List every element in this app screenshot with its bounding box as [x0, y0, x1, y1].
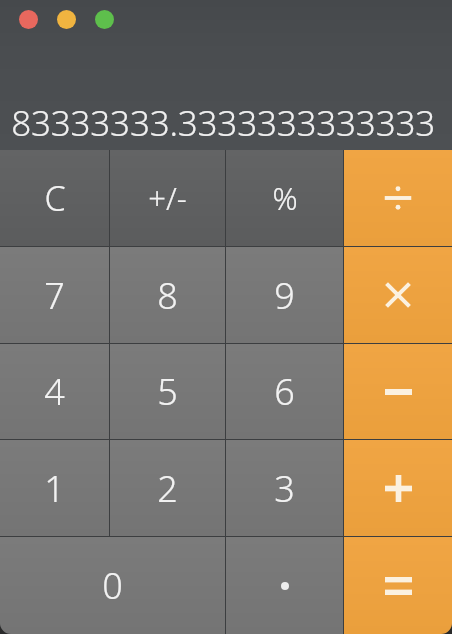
staticText: C: [44, 175, 66, 221]
button[interactable]: 4: [0, 344, 109, 439]
button[interactable]: [95, 10, 114, 29]
staticText: 4: [44, 367, 65, 416]
button[interactable]: +/-: [110, 150, 225, 246]
button[interactable]: Multiply: [344, 247, 452, 343]
button[interactable]: 2: [110, 440, 225, 536]
button[interactable]: Add: [344, 440, 452, 536]
button[interactable]: 9: [226, 247, 343, 343]
staticText: 2: [157, 464, 178, 513]
staticText: 0: [102, 561, 123, 610]
button[interactable]: Divide: [344, 150, 452, 246]
button[interactable]: 0: [0, 537, 225, 634]
staticText: 83333333.333333333333333: [0, 99, 435, 147]
staticText: 9: [274, 271, 295, 320]
staticText: 8: [157, 271, 178, 320]
staticText: 7: [44, 271, 65, 320]
staticText: 1: [44, 464, 65, 513]
button[interactable]: 6: [226, 344, 343, 439]
button[interactable]: 1: [0, 440, 109, 536]
button[interactable]: [19, 10, 38, 29]
staticText: 5: [157, 367, 178, 416]
button[interactable]: 8: [110, 247, 225, 343]
button[interactable]: Subtract: [344, 344, 452, 439]
button[interactable]: 7: [0, 247, 109, 343]
button[interactable]: Decimal point: [226, 537, 343, 634]
button[interactable]: Equals: [344, 537, 452, 634]
staticText: 6: [274, 367, 295, 416]
button[interactable]: 5: [110, 344, 225, 439]
button[interactable]: %: [226, 150, 343, 246]
button[interactable]: 3: [226, 440, 343, 536]
staticText: +/-: [148, 177, 187, 219]
button[interactable]: C: [0, 150, 109, 246]
button[interactable]: [57, 10, 76, 29]
staticText: 3: [274, 464, 295, 513]
staticText: %: [272, 177, 298, 219]
